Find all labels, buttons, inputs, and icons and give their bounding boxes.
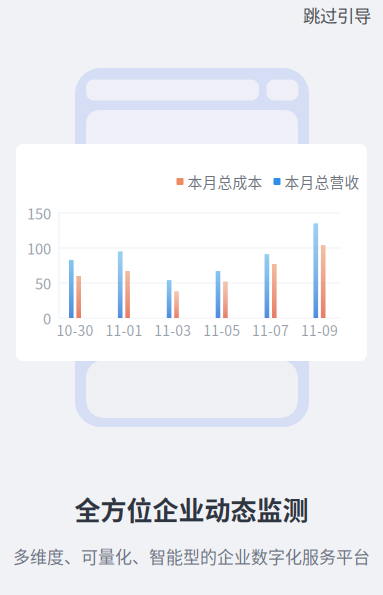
staticText: 11-05 [203, 320, 240, 340]
staticText: 50 [35, 272, 51, 294]
staticText: 10-30 [56, 320, 93, 340]
staticText: 11-03 [154, 320, 191, 340]
staticText: 全方位企业动态监测 [74, 490, 308, 528]
button[interactable]: 跳过引导 [294, 0, 380, 33]
staticText: 11-07 [252, 320, 289, 340]
staticText: 100 [27, 237, 51, 259]
staticText: 本月总成本 [187, 171, 262, 192]
staticText: 0 [43, 307, 51, 329]
staticText: 11-01 [105, 320, 142, 340]
staticText: 跳过引导 [303, 2, 371, 28]
staticText: 11-09 [301, 320, 338, 340]
staticText: 150 [27, 202, 51, 224]
staticText: 本月总营收 [284, 171, 359, 192]
staticText: 多维度、可量化、智能型的企业数字化服务平台 [13, 544, 370, 568]
